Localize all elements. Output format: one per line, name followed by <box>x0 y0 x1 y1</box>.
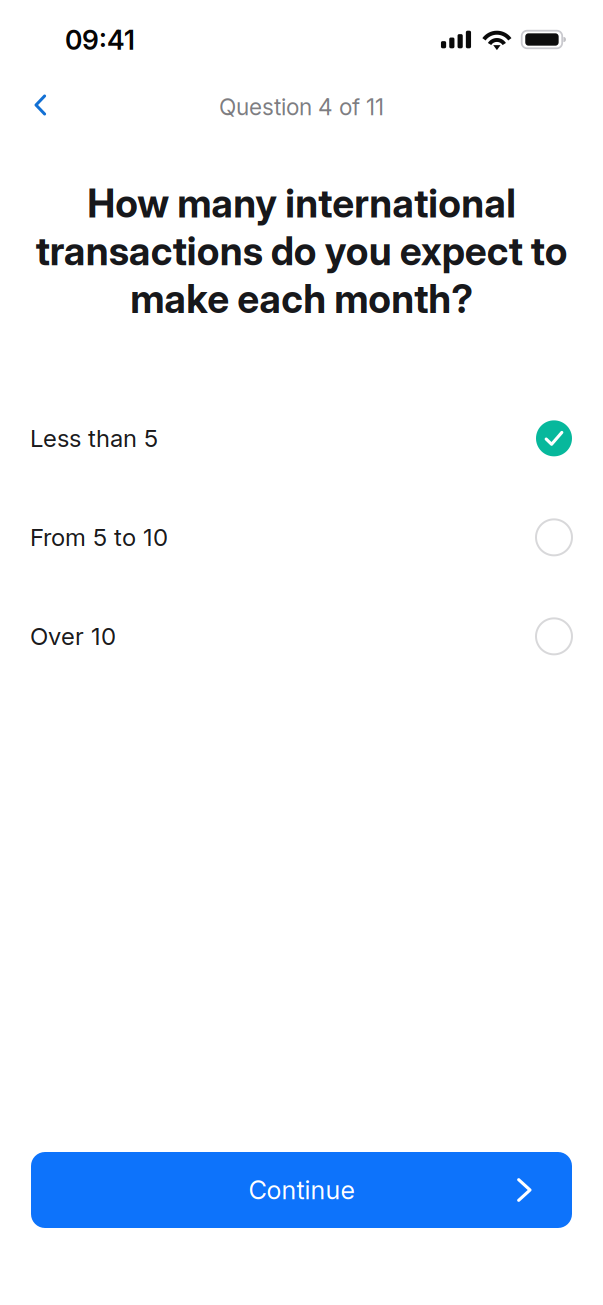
button[interactable]: Over 10 <box>0 605 603 667</box>
button[interactable]: Back <box>0 84 65 130</box>
button[interactable]: From 5 to 10 <box>0 506 603 568</box>
button[interactable]: Continue <box>31 1152 572 1228</box>
staticText: Over 10 <box>30 622 116 651</box>
staticText: Question 4 of 11 <box>219 93 384 121</box>
staticText: How many international transactions do y… <box>35 180 567 322</box>
staticText: 09:41 <box>65 24 135 56</box>
button[interactable]: Less than 5 <box>0 407 603 469</box>
staticText: From 5 to 10 <box>30 523 168 552</box>
staticText: Less than 5 <box>30 424 158 453</box>
staticText: Continue <box>248 1175 354 1205</box>
